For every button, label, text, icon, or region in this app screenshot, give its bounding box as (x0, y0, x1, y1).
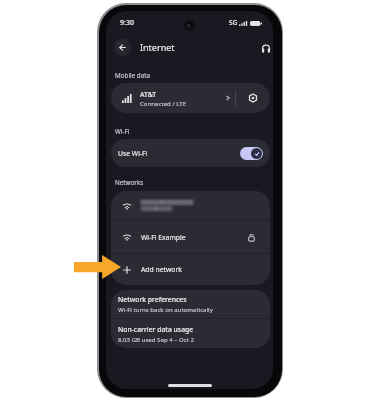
button[interactable]: Network preferences (111, 290, 270, 318)
button[interactable]: Audio output (255, 38, 273, 60)
button[interactable]: AT&T (111, 83, 235, 113)
button[interactable]: Mobile network settings (236, 83, 270, 113)
button[interactable]: Use Wi-Fi (111, 139, 270, 167)
staticText: AT&T (140, 90, 157, 99)
button[interactable] (111, 191, 270, 220)
staticText: Non-carrier data usage (118, 325, 194, 334)
staticText: 8.03 GB used Sep 4 – Oct 2 (118, 335, 194, 343)
staticText: Network preferences (118, 295, 187, 304)
button[interactable]: Wi-Fi Example (111, 221, 270, 253)
button[interactable]: Non-carrier data usage (111, 319, 270, 348)
staticText: Use Wi-Fi (118, 149, 148, 158)
button[interactable]: Back (111, 36, 133, 58)
staticText: Networks (115, 178, 144, 187)
staticText: Connected / LTE (140, 99, 187, 107)
staticText: Wi-Fi (115, 127, 130, 136)
staticText: Wi-Fi turns back on automatically (118, 305, 213, 313)
staticText: 9:30 (120, 18, 134, 28)
staticText: Mobile data (115, 71, 151, 80)
staticText: 5G (229, 18, 238, 27)
staticText: Wi-Fi Example (141, 233, 186, 242)
staticText: Internet (140, 41, 175, 53)
button[interactable]: Add network (111, 254, 270, 285)
staticText: Add network (141, 265, 182, 274)
